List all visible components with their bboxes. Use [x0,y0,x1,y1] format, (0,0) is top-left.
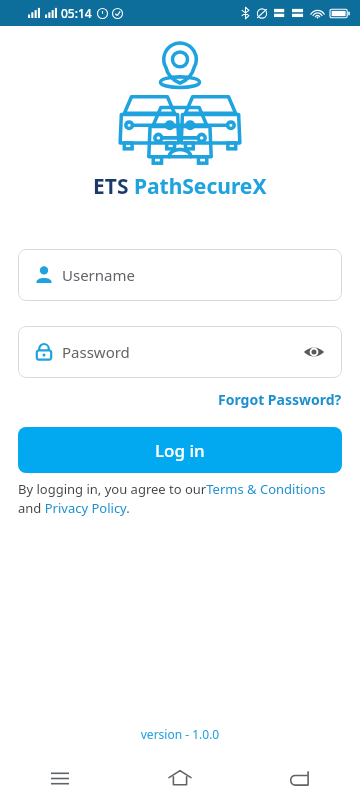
staticText: Log in [155,439,205,462]
staticText: Password [62,342,298,362]
button[interactable]: Recents [0,756,120,800]
staticText: version - 1.0.0 [0,726,360,742]
staticText: By logging in, you agree to ourTerms & C… [18,480,342,517]
button[interactable]: Show password [298,336,330,368]
button[interactable]: Username [18,249,342,301]
button[interactable]: Forgot Password? [218,388,342,411]
staticText: 05:14 [61,5,92,21]
button[interactable]: Password [18,326,342,378]
staticText: ETS PathSecureX [93,172,267,201]
staticText: Username [62,265,135,285]
button[interactable]: Home [120,756,240,800]
button[interactable]: Log in [18,427,342,473]
staticText: Forgot Password? [218,390,342,409]
button[interactable]: Back [240,756,360,800]
